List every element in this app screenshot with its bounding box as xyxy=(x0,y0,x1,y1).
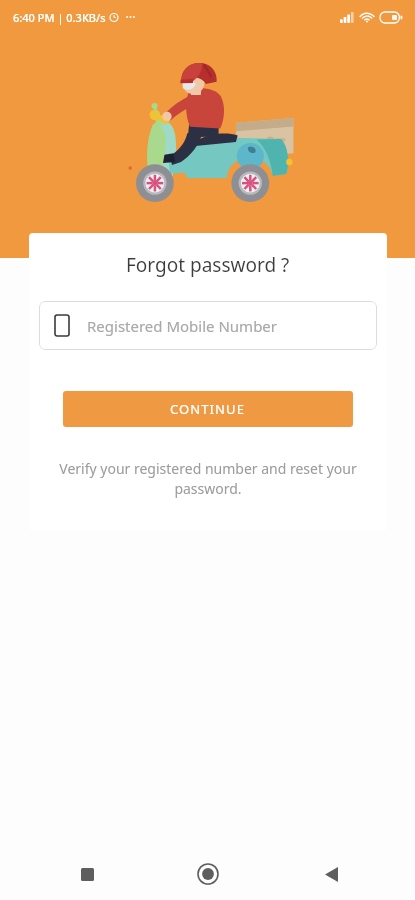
staticText: Forgot password ? xyxy=(126,252,290,278)
staticText: Verify your registered number and reset … xyxy=(47,459,369,499)
button[interactable]: Back xyxy=(277,848,415,900)
button[interactable]: CONTINUE xyxy=(63,391,353,427)
staticText: 6:40 PM | 0.3KB/s xyxy=(13,10,106,25)
staticText: Registered Mobile Number xyxy=(87,316,278,336)
button[interactable]: Recents xyxy=(0,848,139,900)
staticText: CONTINUE xyxy=(170,400,246,418)
button[interactable]: Registered Mobile Number xyxy=(39,301,377,350)
button[interactable]: Home xyxy=(139,848,277,900)
